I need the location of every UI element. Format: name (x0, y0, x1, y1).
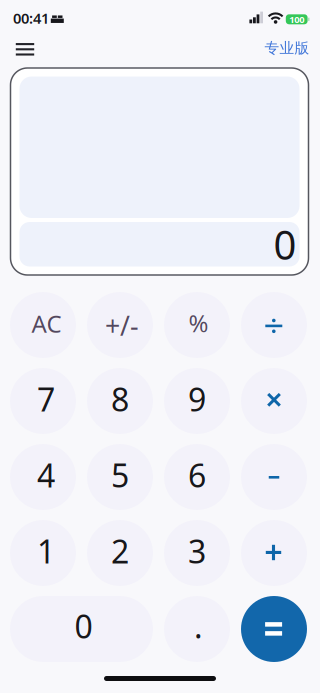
staticText: AC (31, 308, 61, 339)
button[interactable]: Multiply (241, 368, 307, 434)
staticText: 0 (273, 218, 296, 271)
button[interactable]: Equals (241, 596, 307, 662)
staticText: 专业版 (264, 39, 309, 57)
button[interactable]: 9 (164, 368, 230, 434)
staticText: 100 (289, 13, 304, 25)
staticText: 2 (111, 530, 129, 572)
staticText: 5 (111, 454, 129, 496)
staticText: 7 (37, 378, 55, 420)
button[interactable]: 6 (164, 444, 230, 510)
button[interactable]: 5 (87, 444, 153, 510)
staticText: 8 (111, 378, 129, 420)
staticText: 0 (74, 605, 92, 647)
button[interactable]: Subtract (241, 444, 307, 510)
staticText: 6 (188, 454, 206, 496)
button[interactable]: 2 (87, 520, 153, 586)
button[interactable]: 4 (10, 444, 76, 510)
staticText: 3 (188, 530, 206, 572)
button[interactable]: Add (241, 520, 307, 586)
button[interactable]: 1 (10, 520, 76, 586)
staticText: 4 (37, 454, 55, 496)
button[interactable]: Percent (164, 292, 230, 358)
button[interactable]: Menu (8, 35, 42, 63)
button[interactable]: 7 (10, 368, 76, 434)
button[interactable]: 专业版 (264, 39, 309, 57)
button[interactable]: Plus minus (87, 292, 153, 358)
staticText: 1 (37, 530, 55, 572)
button[interactable]: All clear (10, 292, 76, 358)
staticText: % (188, 307, 208, 339)
button[interactable]: Decimal point (164, 596, 230, 662)
staticText: +/- (105, 308, 139, 343)
button[interactable]: 3 (164, 520, 230, 586)
staticText: . (194, 605, 203, 647)
button[interactable]: 8 (87, 368, 153, 434)
button[interactable]: 0 (10, 596, 153, 662)
staticText: 00:41 (13, 8, 49, 28)
button[interactable]: Divide (241, 292, 307, 358)
staticText: 9 (188, 378, 206, 420)
